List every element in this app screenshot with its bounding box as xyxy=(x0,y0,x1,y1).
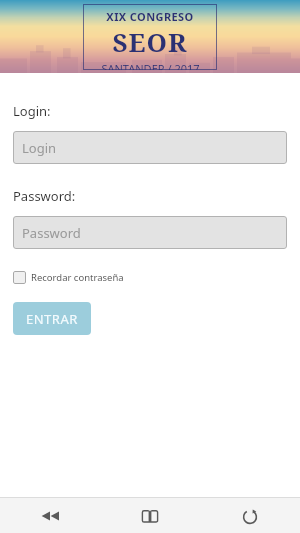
staticText: Login: xyxy=(13,102,51,120)
button[interactable]: Back xyxy=(0,498,100,533)
staticText: SEOR xyxy=(112,24,188,59)
button[interactable]: Recordar contraseña xyxy=(13,269,124,286)
button[interactable]: Password xyxy=(13,216,287,249)
button[interactable]: Bookmarks xyxy=(100,498,200,533)
staticText: Password: xyxy=(13,187,76,205)
staticText: SANTANDER / 2017 xyxy=(101,61,200,70)
button[interactable]: Reload xyxy=(200,498,300,533)
staticText: Recordar contraseña xyxy=(31,271,124,284)
staticText: ENTRAR xyxy=(26,310,78,328)
staticText: XIX CONGRESO xyxy=(106,9,194,24)
button[interactable]: Login xyxy=(13,131,287,164)
staticText: Password xyxy=(22,224,81,242)
button[interactable]: ENTRAR xyxy=(13,302,91,335)
staticText: Login xyxy=(22,139,57,157)
